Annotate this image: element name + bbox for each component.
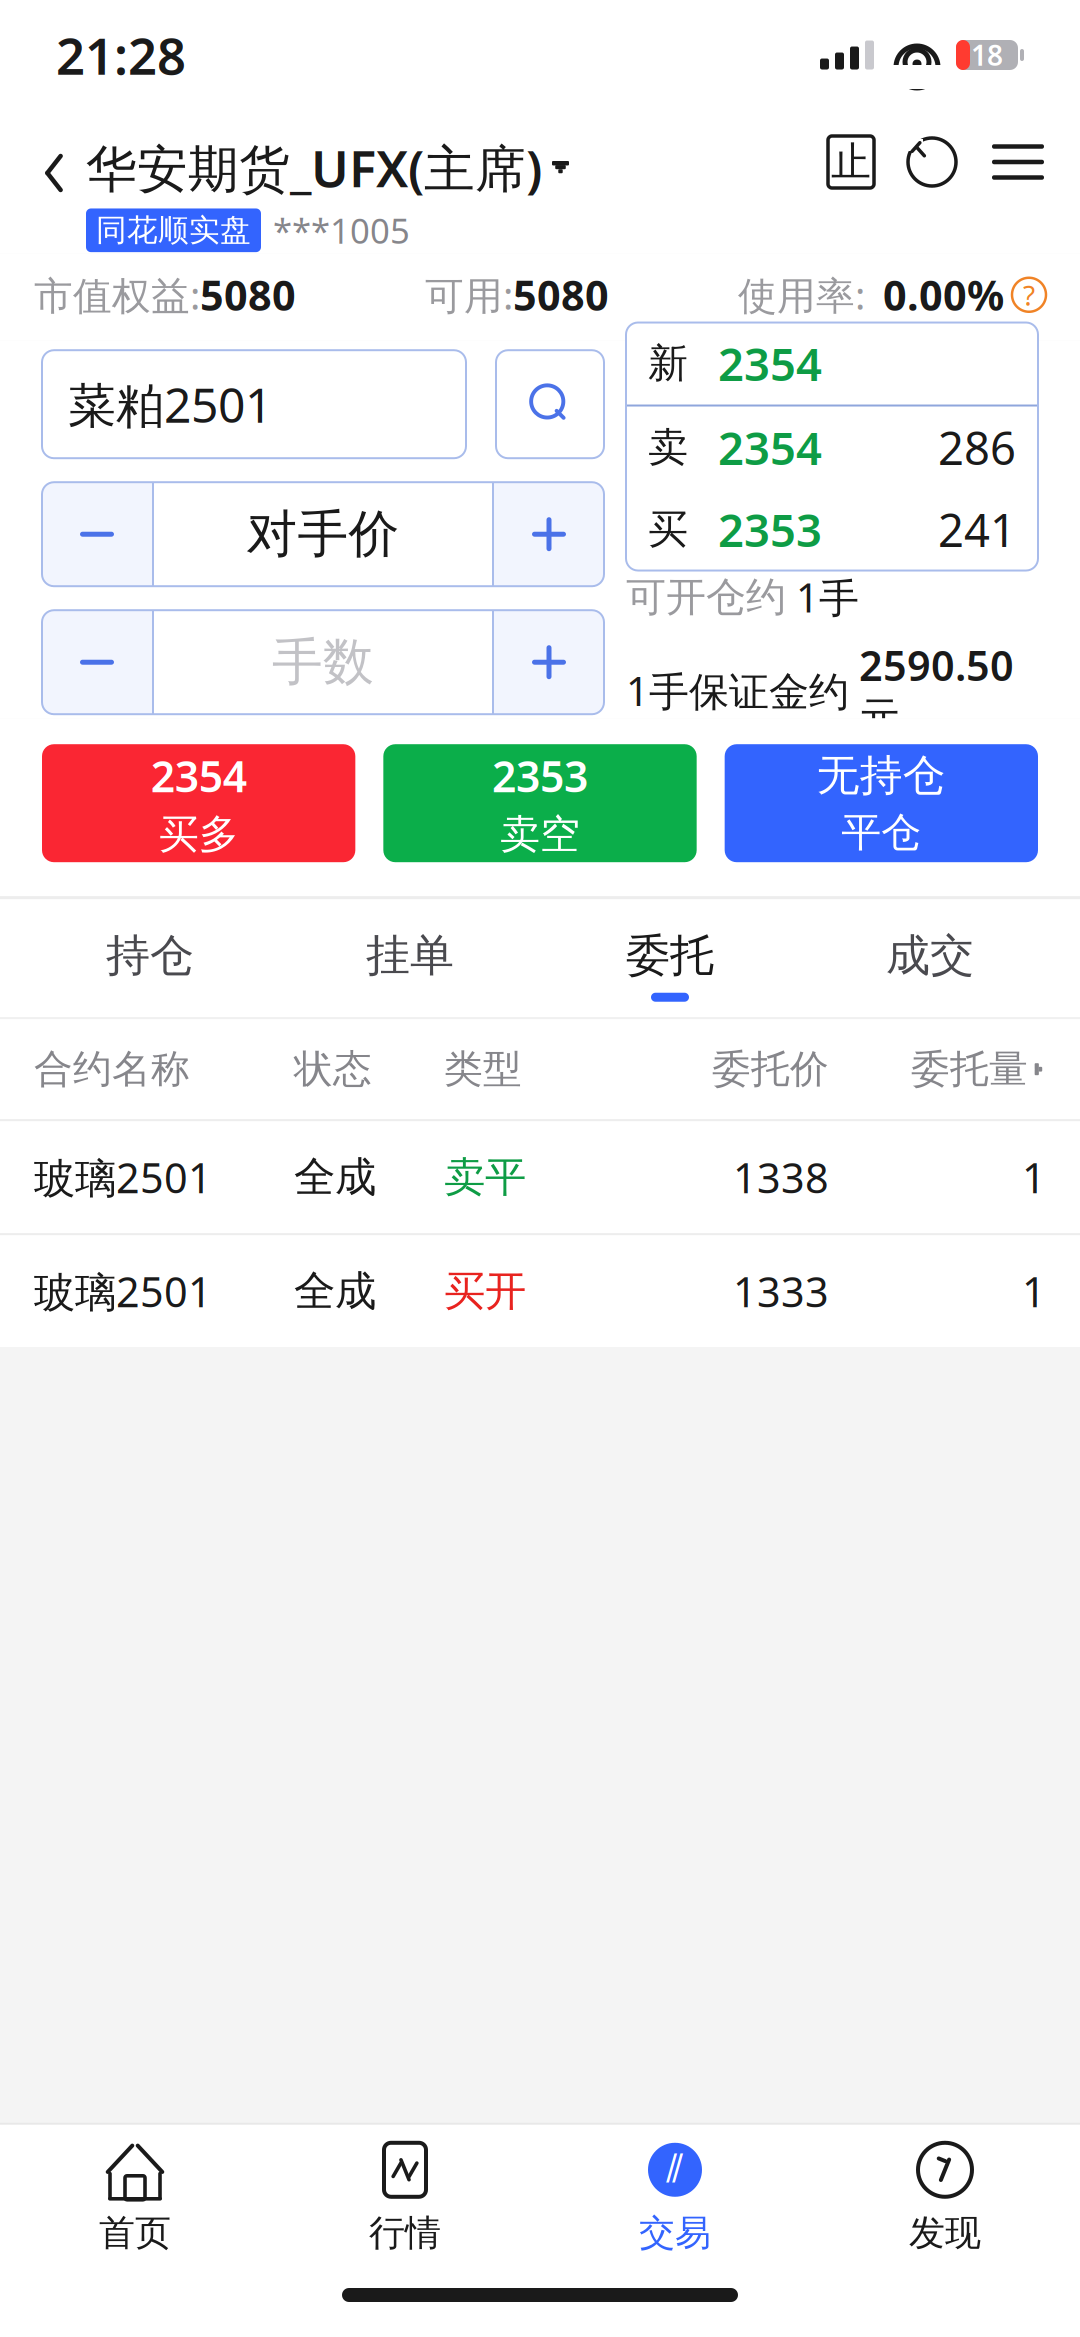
staticText: 发现 bbox=[909, 2211, 981, 2255]
button[interactable]: 2354 bbox=[42, 744, 355, 862]
button[interactable]: 成交 bbox=[800, 915, 1060, 1002]
staticText: 1手 bbox=[796, 570, 859, 624]
button[interactable]: 返回 bbox=[22, 130, 86, 216]
button[interactable]: 手数 bbox=[154, 610, 492, 714]
staticText: 2353 bbox=[492, 747, 588, 804]
button[interactable]: 首页 bbox=[0, 2125, 270, 2265]
button[interactable]: 玻璃2501 bbox=[0, 1121, 1080, 1233]
button[interactable]: 增加手数 bbox=[494, 610, 604, 714]
button[interactable]: 搜索合约 bbox=[496, 350, 604, 458]
staticText: 0.00% bbox=[883, 267, 1004, 322]
staticText: 买多 bbox=[159, 810, 239, 859]
button[interactable]: 减少手数 bbox=[42, 610, 152, 714]
button[interactable]: ⫽ bbox=[540, 2125, 810, 2265]
staticText: 2354 bbox=[718, 333, 822, 394]
staticText: 成交 bbox=[886, 929, 974, 983]
staticText: 交易 bbox=[639, 2211, 711, 2255]
staticText: 华安期货_UFX(主席) bbox=[86, 134, 542, 201]
staticText: 委托 bbox=[626, 929, 714, 983]
staticText: 市值权益: bbox=[34, 269, 200, 320]
staticText: 买 bbox=[648, 505, 688, 554]
staticText: 玻璃2501 bbox=[34, 1264, 212, 1319]
staticText: 类型 bbox=[444, 1045, 522, 1093]
staticText: 对手价 bbox=[246, 503, 399, 565]
staticText: 持仓 bbox=[106, 929, 194, 983]
staticText: 241 bbox=[938, 499, 1016, 560]
staticText: 委托价 bbox=[712, 1045, 829, 1093]
staticText: 委托量 bbox=[911, 1045, 1028, 1093]
button[interactable]: 委托 bbox=[540, 915, 800, 1002]
button[interactable]: 华安期货_UFX(主席) bbox=[86, 134, 569, 201]
staticText: 菜粕2501 bbox=[68, 372, 272, 436]
button[interactable]: 2353 bbox=[383, 744, 697, 862]
staticText: 使用率: bbox=[738, 269, 875, 320]
staticText: 5080 bbox=[200, 267, 296, 322]
staticText: 无持仓 bbox=[817, 749, 946, 802]
staticText: ⫽ bbox=[666, 2150, 684, 2189]
staticText: 平仓 bbox=[841, 808, 921, 857]
staticText: 2354 bbox=[718, 417, 822, 478]
staticText: 可开仓约 bbox=[626, 572, 786, 622]
staticText: 状态 bbox=[294, 1045, 372, 1093]
staticText: 2353 bbox=[718, 499, 822, 560]
staticText: 止 bbox=[831, 137, 871, 186]
staticText: 合约名称 bbox=[34, 1045, 190, 1093]
staticText: 卖 bbox=[648, 423, 688, 472]
button[interactable]: 刷新 bbox=[904, 134, 960, 190]
staticText: 手数 bbox=[272, 631, 374, 693]
button[interactable]: 菜粕2501 bbox=[42, 350, 466, 458]
staticText: ? bbox=[1023, 276, 1035, 313]
staticText: 买开 bbox=[444, 1266, 526, 1317]
staticText: 挂单 bbox=[366, 929, 454, 983]
staticText: 1333 bbox=[733, 1264, 829, 1319]
staticText: 2354 bbox=[151, 747, 247, 804]
staticText: 同花顺实盘 bbox=[96, 211, 251, 249]
staticText: 新 bbox=[648, 339, 688, 388]
button[interactable]: 行情 bbox=[270, 2125, 540, 2265]
staticText: 首页 bbox=[99, 2211, 171, 2255]
staticText: 18 bbox=[971, 36, 1003, 74]
staticText: ***1005 bbox=[273, 207, 410, 253]
staticText: 1 bbox=[1022, 1264, 1046, 1319]
staticText: 5080 bbox=[513, 267, 609, 322]
button[interactable]: 挂单 bbox=[280, 915, 540, 1002]
button[interactable]: 发现 bbox=[810, 2125, 1080, 2265]
staticText: 1手保证金约 bbox=[626, 664, 849, 717]
staticText: 卖平 bbox=[444, 1152, 526, 1203]
staticText: 2590.50元 bbox=[859, 638, 1014, 743]
button[interactable]: 菜单 bbox=[990, 134, 1046, 190]
staticText: 1338 bbox=[733, 1150, 829, 1205]
staticText: 286 bbox=[938, 417, 1016, 478]
button[interactable]: 无持仓 bbox=[725, 744, 1038, 862]
staticText: 行情 bbox=[369, 2211, 441, 2255]
staticText: 1 bbox=[1022, 1150, 1046, 1205]
button[interactable]: 使用率说明 bbox=[1012, 278, 1046, 312]
button[interactable]: 加价 bbox=[494, 482, 604, 586]
button[interactable]: 减价 bbox=[42, 482, 152, 586]
staticText: 全成 bbox=[294, 1266, 376, 1317]
button[interactable]: 对手价 bbox=[154, 482, 492, 586]
staticText: 可用: bbox=[425, 269, 513, 320]
staticText: 全成 bbox=[294, 1152, 376, 1203]
button[interactable]: 止盈止损 bbox=[828, 136, 874, 188]
button[interactable]: 玻璃2501 bbox=[0, 1235, 1080, 1347]
button[interactable]: 持仓 bbox=[20, 915, 280, 1002]
staticText: 玻璃2501 bbox=[34, 1150, 212, 1205]
staticText: 卖空 bbox=[500, 810, 580, 859]
staticText: 21:28 bbox=[56, 21, 186, 89]
